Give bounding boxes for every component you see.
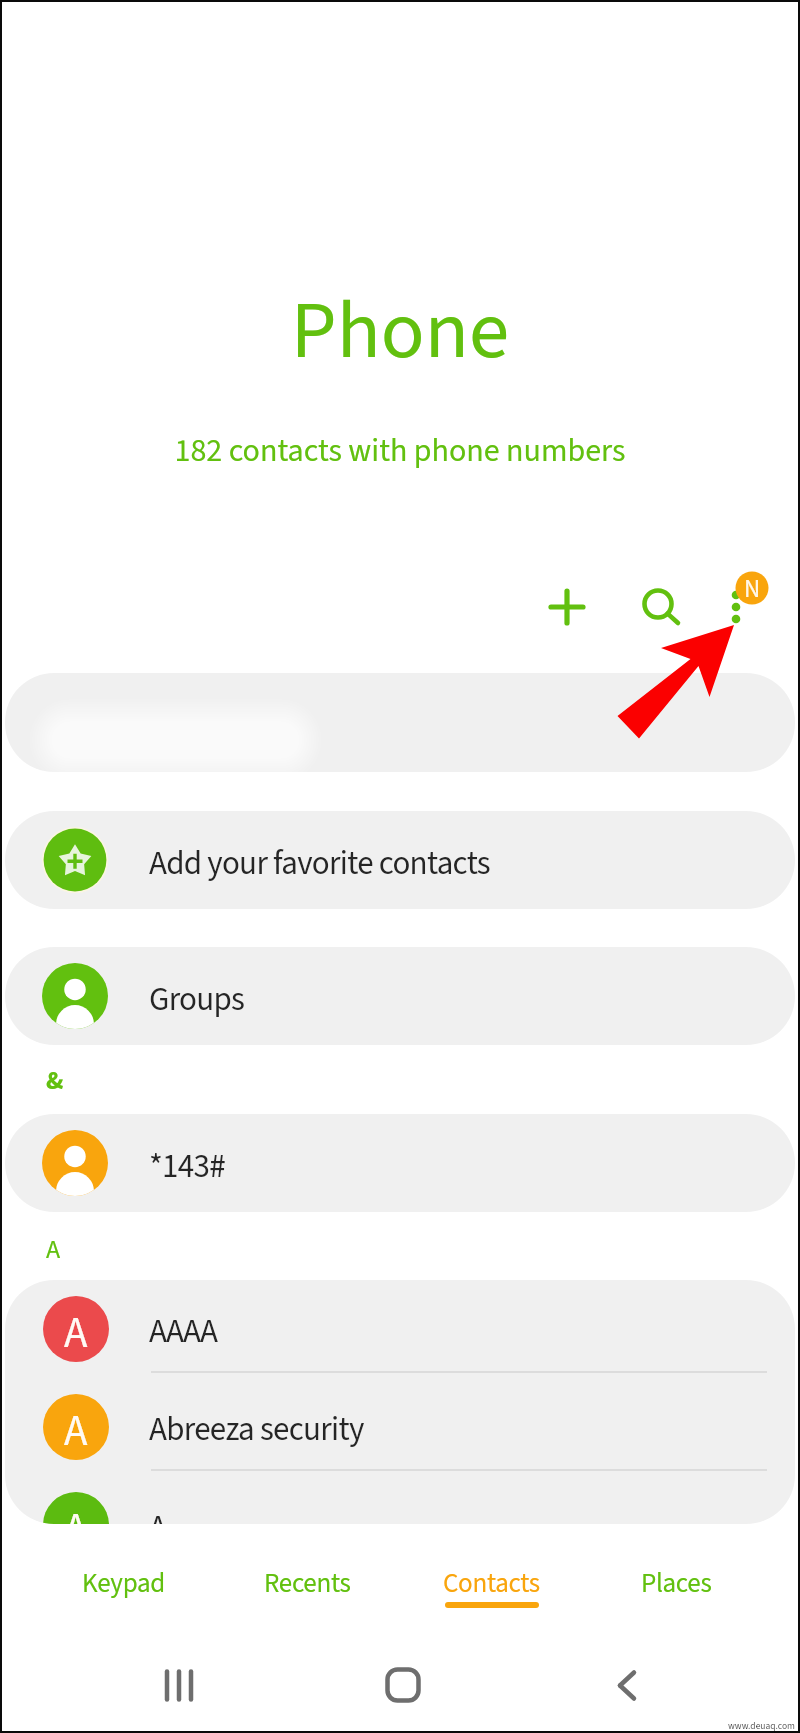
- staticText: Groups: [149, 976, 245, 1023]
- staticText: Contacts: [443, 1564, 540, 1602]
- button[interactable]: Add contact: [531, 571, 603, 643]
- staticText: N: [744, 571, 761, 605]
- staticText: A: [149, 1504, 167, 1524]
- button[interactable]: Search: [622, 567, 694, 639]
- button[interactable]: Recent apps: [151, 1657, 207, 1713]
- staticText: www.deuaq.com: [728, 1719, 795, 1733]
- staticText: Recents: [264, 1564, 351, 1602]
- button[interactable]: *143#: [5, 1114, 795, 1212]
- button[interactable]: Recents: [215, 1564, 399, 1602]
- staticText: Phone: [0, 274, 800, 389]
- staticText: A: [64, 1401, 88, 1460]
- button[interactable]: A: [5, 1280, 795, 1378]
- staticText: Places: [641, 1564, 712, 1602]
- staticText: AAAA: [149, 1308, 218, 1355]
- button[interactable]: Places: [584, 1564, 769, 1602]
- button[interactable]: Search contacts: [5, 673, 795, 772]
- staticText: &: [46, 1062, 64, 1099]
- staticText: A: [64, 1303, 88, 1362]
- button[interactable]: Groups: [5, 947, 795, 1045]
- staticText: Add your favorite contacts: [149, 840, 490, 887]
- button[interactable]: A: [5, 1476, 795, 1524]
- staticText: Keypad: [82, 1564, 165, 1602]
- staticText: *143#: [149, 1143, 225, 1190]
- button[interactable]: A: [5, 1378, 795, 1476]
- button[interactable]: Home: [375, 1657, 431, 1713]
- button[interactable]: Back: [599, 1657, 655, 1713]
- button[interactable]: More options: [700, 552, 780, 632]
- staticText: 182 contacts with phone numbers: [0, 428, 800, 474]
- button[interactable]: Keypad: [31, 1564, 215, 1602]
- staticText: Abreeza security: [149, 1406, 364, 1453]
- button[interactable]: Add your favorite contacts: [5, 811, 795, 909]
- staticText: A: [46, 1231, 61, 1268]
- button[interactable]: Contacts: [399, 1564, 584, 1608]
- staticText: A: [64, 1499, 88, 1524]
